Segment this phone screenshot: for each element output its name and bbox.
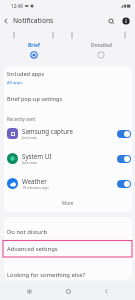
staticText: Advanced settings (7, 245, 58, 253)
staticText: Samsung capture (22, 127, 73, 135)
staticText: Detailed (91, 42, 112, 49)
button[interactable]: More (52, 197, 84, 209)
staticText: Weather (22, 177, 47, 185)
staticText: Do not disturb (7, 228, 48, 236)
button[interactable]: Back (97, 282, 115, 300)
button[interactable]: Toggle Samsung capture notifications (117, 130, 131, 138)
button[interactable]: Do not disturb (0, 224, 135, 240)
staticText: Recently sent (7, 116, 36, 122)
staticText: Just now (22, 160, 37, 165)
staticText: Notifications (13, 16, 54, 25)
staticText: 19 minutes ago (22, 185, 49, 190)
staticText: More (62, 200, 74, 206)
button[interactable]: Advanced settings (3, 240, 132, 257)
staticText: Brief pop-up settings (7, 95, 63, 103)
button[interactable]: Samsung capture (0, 126, 135, 141)
staticText: System UI (22, 152, 52, 160)
staticText: 12:48 (11, 3, 23, 9)
staticText: Brief (28, 42, 40, 49)
button[interactable]: Navigate up (0, 15, 11, 26)
button[interactable]: Search (104, 14, 118, 28)
staticText: All apps (7, 80, 23, 86)
staticText: Included apps (7, 70, 45, 78)
button[interactable]: Detailed (67, 42, 135, 59)
button[interactable]: Toggle System UI notifications (117, 155, 131, 163)
button[interactable]: Home (59, 282, 77, 300)
button[interactable]: More information (119, 14, 133, 28)
button[interactable]: System UI (0, 151, 135, 166)
button[interactable]: Looking for something else? (0, 267, 135, 282)
button[interactable]: Included apps (0, 66, 135, 90)
button[interactable]: Brief pop-up settings (0, 91, 135, 106)
staticText: Just now (22, 135, 37, 140)
button[interactable]: Toggle Weather notifications (117, 180, 131, 188)
staticText: Looking for something else? (7, 271, 86, 279)
button[interactable]: Recent apps (20, 282, 38, 300)
button[interactable]: Weather (0, 176, 135, 191)
button[interactable]: Brief (0, 42, 67, 59)
